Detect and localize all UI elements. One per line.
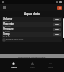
staticText: Sponsored content here: [18, 55, 46, 58]
staticText: Edit: [55, 23, 59, 26]
staticText: 3.6 L/m: [3, 25, 11, 27]
staticText: Aqua data: [24, 12, 40, 16]
button[interactable]: Enable auto sync: [2, 37, 62, 42]
button[interactable]: Edit: [53, 33, 61, 36]
staticText: Data: [30, 66, 35, 69]
button[interactable]: Temp: [2, 32, 62, 37]
staticText: Enable auto sync: [6, 38, 24, 41]
button[interactable]: Data: [27, 59, 38, 72]
button[interactable]: Edit: [53, 23, 61, 26]
button[interactable]: Edit: [53, 28, 61, 31]
button[interactable]: More: [45, 59, 56, 72]
button[interactable]: Pressure: [2, 27, 62, 32]
button[interactable]: Record: [57, 6, 62, 10]
staticText: Pressure: [3, 27, 14, 30]
staticText: 1.2 bar: [3, 30, 10, 32]
staticText: Home: [11, 66, 17, 69]
staticText: More: [48, 66, 53, 69]
staticText: Flow rate: [3, 22, 14, 25]
button[interactable]: Menu: [2, 5, 7, 10]
staticText: 21.5 °C: [3, 35, 10, 37]
button[interactable]: Advertisement: [0, 54, 64, 58]
staticText: Edit: [55, 18, 59, 21]
button[interactable]: Flow rate: [2, 22, 62, 27]
staticText: Temp: [3, 32, 10, 35]
button[interactable]: Volume: [2, 17, 62, 22]
button[interactable]: Edit: [53, 18, 61, 21]
staticText: Edit: [55, 33, 59, 36]
staticText: 128.4 L: [3, 20, 10, 22]
staticText: Edit: [55, 28, 59, 31]
staticText: Volume: [3, 17, 13, 20]
button[interactable]: Home: [8, 59, 19, 72]
